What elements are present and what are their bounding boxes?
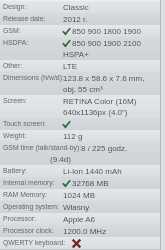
staticText: Weight:: [3, 132, 27, 140]
staticText: obj. 55 cm³: [63, 85, 103, 94]
staticText: HSPA+: [63, 50, 89, 59]
staticText: Processor:: [3, 215, 36, 223]
staticText: 112 g: [63, 132, 83, 141]
staticText: Battery:: [3, 167, 27, 175]
staticText: GSM time (talk/stand-by):: [3, 144, 82, 152]
staticText: 850 900 1800 1900: [72, 27, 141, 36]
button[interactable]: Processor clock:: [0, 225, 165, 237]
button[interactable]: Processor:: [0, 213, 165, 225]
button[interactable]: Operating system:: [0, 201, 165, 213]
button[interactable]: GSM:: [0, 25, 165, 37]
button[interactable]: Battery:: [0, 165, 165, 177]
staticText: Other:: [3, 62, 23, 70]
staticText: Touch screen:: [3, 120, 46, 128]
button[interactable]: Release date:: [0, 13, 165, 25]
staticText: Processor clock:: [3, 227, 54, 235]
button[interactable]: RAM Memory:: [0, 189, 165, 201]
staticText: GSM:: [3, 27, 21, 35]
button[interactable]: Weight:: [0, 130, 165, 142]
staticText: HSDPA:: [3, 39, 29, 47]
staticText: RETINA Color (16M): [63, 97, 137, 106]
staticText: Screen:: [3, 97, 27, 105]
button[interactable]: GSM time (talk/stand-by):: [0, 142, 165, 165]
staticText: RAM Memory:: [3, 191, 48, 199]
staticText: 123.8 x 58.6 x 7.6 mm,: [63, 74, 145, 83]
staticText: QWERTY keyboard:: [3, 239, 66, 247]
staticText: LTE: [63, 62, 78, 71]
button[interactable]: Internal memory:: [0, 177, 165, 189]
staticText: 8 / 225 godz.: [81, 144, 128, 153]
staticText: Własny: [63, 203, 90, 212]
staticText: Li-Ion 1440 mAh: [63, 167, 122, 176]
staticText: 1200.0 MHz: [63, 227, 107, 236]
staticText: Release date:: [3, 15, 46, 23]
staticText: (9.4d): [50, 155, 71, 164]
staticText: 1024 MB: [63, 191, 96, 200]
staticText: Dimensions (h/w/d):: [3, 74, 64, 82]
button[interactable]: Dimensions (h/w/d):: [0, 72, 165, 95]
staticText: 2012 r.: [63, 15, 88, 24]
button[interactable]: Screen:: [0, 95, 165, 118]
button[interactable]: QWERTY keyboard:: [0, 237, 165, 249]
staticText: Operating system:: [3, 203, 59, 211]
button[interactable]: Other:: [0, 60, 165, 72]
button[interactable]: HSDPA:: [0, 37, 165, 60]
staticText: 32768 MB: [72, 179, 109, 188]
staticText: Classic: [63, 3, 89, 12]
staticText: 640x1136px (4.0"): [63, 108, 128, 117]
button[interactable]: Design:: [0, 1, 165, 13]
button[interactable]: Touch screen:: [0, 118, 165, 130]
staticText: Design:: [3, 3, 27, 11]
staticText: Internal memory:: [3, 179, 55, 187]
staticText: 850 900 1900 2100: [72, 39, 141, 48]
staticText: Apple A6: [63, 215, 96, 224]
